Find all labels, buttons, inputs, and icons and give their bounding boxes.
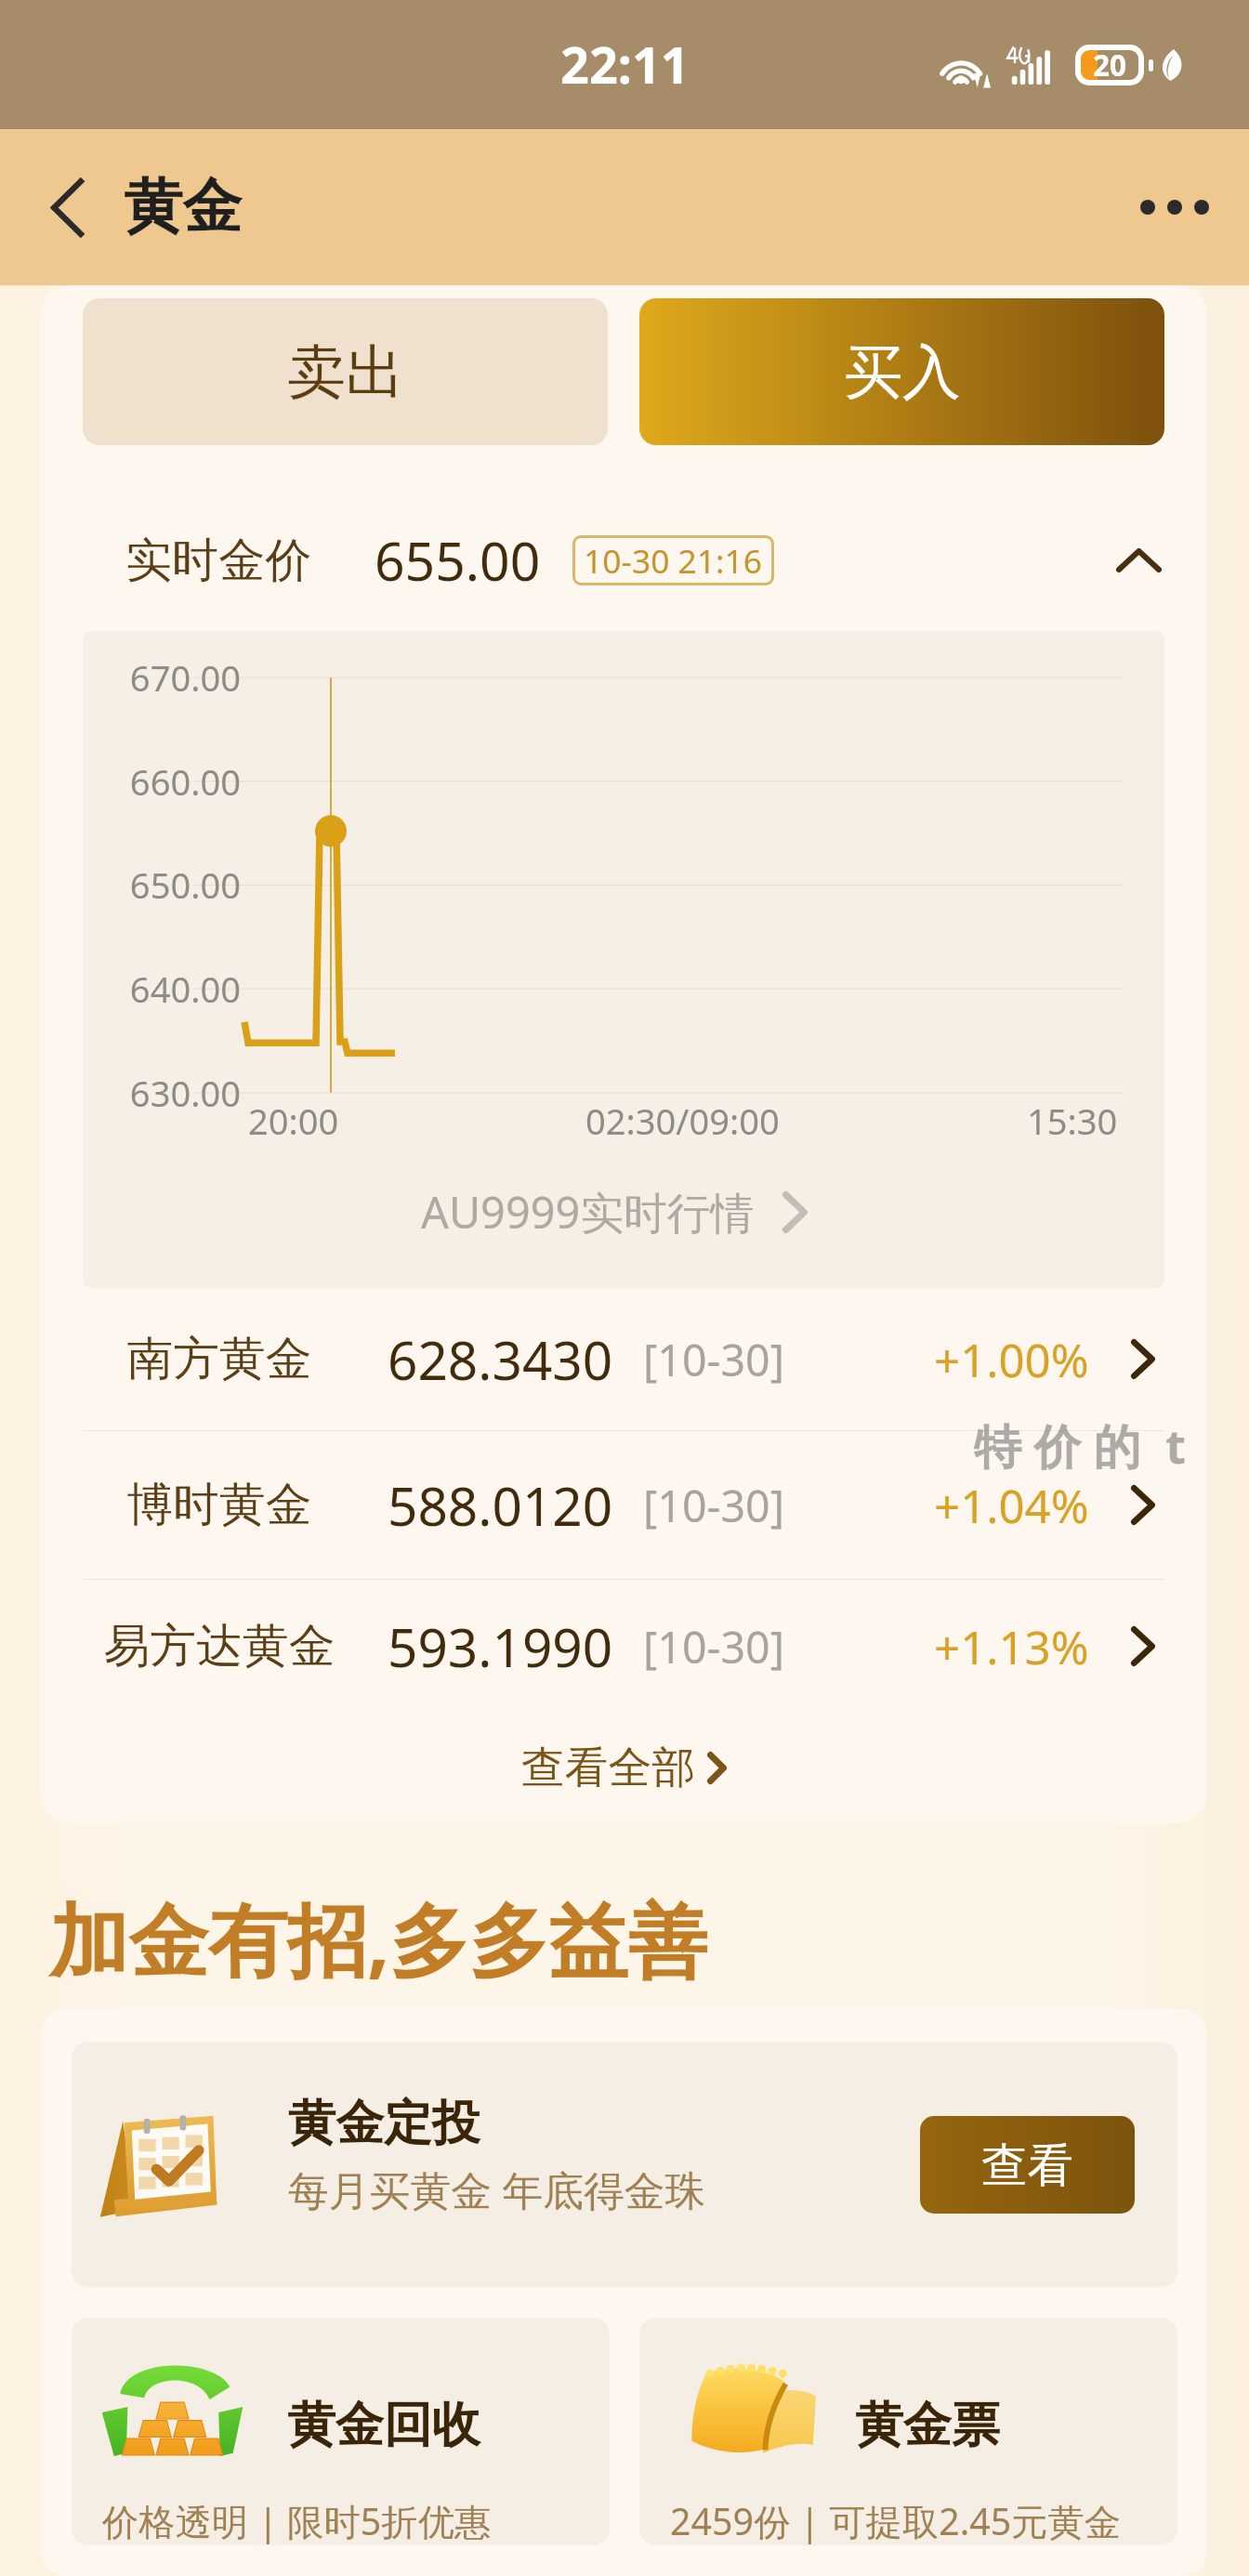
button[interactable]: 黄金定投 <box>72 2042 1177 2287</box>
staticText: 640.00 <box>83 965 241 1013</box>
staticText: 650.00 <box>83 861 241 909</box>
button[interactable]: 实时金价 <box>125 490 1162 631</box>
staticText: 15:30 <box>1027 1097 1118 1145</box>
button[interactable]: 查看全部 <box>83 1713 1164 1823</box>
staticText: +1.00% <box>934 1328 1089 1390</box>
staticText: 2459份 | 可提取2.45元黄金 <box>670 2496 1122 2545</box>
staticText: 加金有招,多多益善 <box>49 1885 708 1993</box>
staticText: 价格透明 | 限时5折优惠 <box>102 2496 492 2545</box>
staticText: 实时金价 <box>125 532 312 590</box>
button[interactable]: 博时黄金 <box>102 1431 1155 1579</box>
staticText: 博时黄金 <box>102 1476 336 1534</box>
staticText: 黄金票 <box>855 2395 1000 2455</box>
staticText: 655.00 <box>375 524 541 597</box>
staticText: 买入 <box>844 335 961 409</box>
staticText: [10-30] <box>643 1476 784 1534</box>
staticText: 588.0120 <box>388 1469 613 1541</box>
staticText: 黄金 <box>124 170 243 244</box>
staticText: 特 价 的 t <box>974 1413 1187 1478</box>
staticText: 593.1990 <box>388 1610 613 1682</box>
staticText: AU9999实时行情 <box>421 1182 755 1242</box>
staticText: 黄金回收 <box>287 2395 480 2455</box>
staticText: +1.13% <box>934 1615 1089 1677</box>
staticText: [10-30] <box>643 1330 784 1388</box>
staticText: 20 <box>1093 45 1127 85</box>
staticText: 查看 <box>981 2136 1073 2194</box>
staticText: [10-30] <box>643 1617 784 1676</box>
staticText: 02:30/09:00 <box>585 1097 780 1145</box>
staticText: 22:11 <box>560 30 690 99</box>
button[interactable]: Back <box>6 146 128 269</box>
staticText: 易方达黄金 <box>102 1617 336 1676</box>
button[interactable]: More options <box>1108 140 1242 274</box>
button[interactable]: 买入 <box>639 298 1164 445</box>
staticText: 628.3430 <box>388 1323 613 1395</box>
button[interactable]: 黄金回收 <box>72 2318 610 2545</box>
button[interactable]: AU9999实时行情 <box>421 1182 808 1242</box>
staticText: 南方黄金 <box>102 1330 336 1388</box>
staticText: +1.04% <box>934 1474 1089 1536</box>
staticText: 黄金定投 <box>288 2093 480 2153</box>
button[interactable]: 易方达黄金 <box>102 1580 1155 1713</box>
staticText: 670.00 <box>83 653 241 702</box>
button[interactable]: 黄金票 <box>639 2318 1177 2545</box>
button[interactable]: 南方黄金 <box>102 1288 1155 1430</box>
staticText: 630.00 <box>83 1069 241 1117</box>
staticText: 10-30 21:16 <box>584 538 763 583</box>
button[interactable]: 卖出 <box>83 298 608 445</box>
staticText: 查看全部 <box>521 1741 696 1795</box>
staticText: 20:00 <box>248 1097 339 1145</box>
staticText: 卖出 <box>287 335 404 409</box>
button[interactable]: 查看 <box>920 2116 1135 2214</box>
staticText: 每月买黄金 年底得金珠 <box>288 2162 706 2217</box>
staticText: 660.00 <box>83 757 241 806</box>
